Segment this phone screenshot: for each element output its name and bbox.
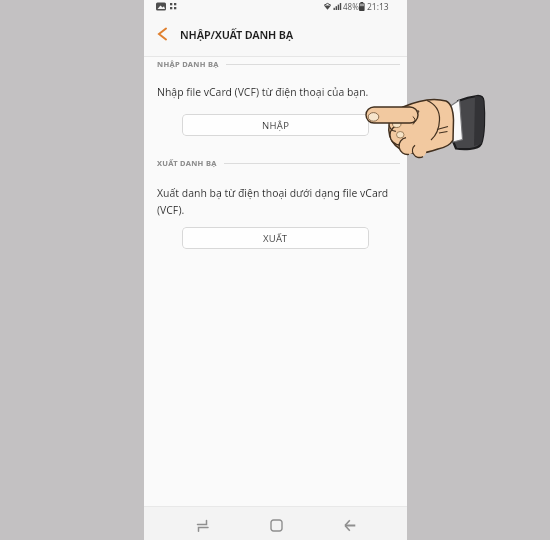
button[interactable]: XUẤT — [182, 227, 369, 249]
staticText: 21:13 — [367, 1, 389, 13]
button[interactable] — [144, 506, 231, 540]
button[interactable] — [144, 12, 180, 56]
button[interactable]: NHẬP — [182, 114, 369, 136]
button[interactable] — [231, 506, 319, 540]
staticText: Xuất danh bạ từ điện thoại dưới dạng fil… — [157, 186, 389, 217]
staticText: XUẤT — [263, 232, 288, 245]
staticText: NHẬP — [262, 119, 290, 132]
staticText: NHẬP DANH BẠ — [157, 59, 219, 69]
button[interactable] — [319, 506, 407, 540]
staticText: NHẬP/XUẤT DANH BẠ — [180, 27, 293, 42]
staticText: Nhập file vCard (VCF) từ điện thoại của … — [157, 85, 369, 99]
staticText: 48% — [343, 1, 359, 12]
staticText: XUẤT DANH BẠ — [157, 158, 217, 168]
